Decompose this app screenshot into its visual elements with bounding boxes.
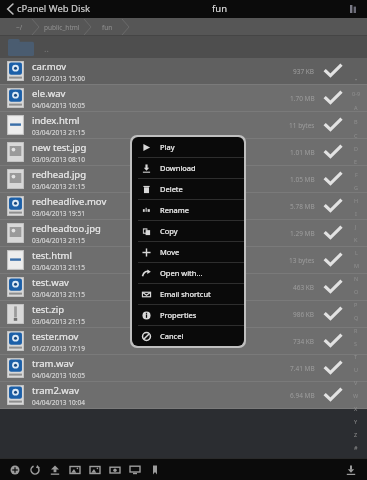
- button[interactable]: Email shortcut: [132, 284, 244, 304]
- button[interactable]: Copy: [132, 221, 244, 241]
- staticText: F: [355, 171, 358, 178]
- staticText: E: [354, 158, 358, 165]
- staticText: Q: [354, 314, 359, 321]
- staticText: 03/04/2013 21:15: [32, 317, 85, 326]
- staticText: D: [354, 145, 359, 152]
- staticText: Play: [160, 142, 175, 152]
- button[interactable]: Camera: [106, 461, 123, 478]
- staticText: tram2.wav: [32, 384, 79, 397]
- staticText: 03/04/2013 21:15: [32, 236, 85, 245]
- staticText: 986 KB: [293, 310, 315, 319]
- button[interactable]: Open with...: [132, 263, 244, 283]
- staticText: Download: [160, 163, 196, 173]
- staticText: tram.wav: [32, 357, 74, 370]
- staticText: 03/04/2013 19:51: [32, 209, 85, 218]
- staticText: 13 bytes: [289, 256, 315, 265]
- staticText: 1.01 MB: [290, 148, 315, 157]
- button[interactable]: Download all: [342, 461, 359, 478]
- staticText: J: [355, 223, 357, 230]
- button[interactable]: Refresh: [26, 461, 43, 478]
- staticText: Cancel: [160, 331, 184, 341]
- button[interactable]: Download: [132, 158, 244, 178]
- staticText: redheadlive.mov: [32, 195, 107, 208]
- button[interactable]: cPanel Web Disk: [4, 0, 94, 17]
- staticText: G: [354, 184, 359, 191]
- staticText: 03/04/2013 21:15: [32, 128, 85, 137]
- staticText: 03/12/2013 15:00: [32, 74, 85, 83]
- button[interactable]: Move: [132, 242, 244, 262]
- button[interactable]: ele.wav: [0, 85, 367, 111]
- staticText: test.html: [32, 249, 72, 262]
- staticText: 1.70 MB: [290, 94, 315, 103]
- button[interactable]: Image: [86, 461, 103, 478]
- staticText: 03/09/2013 08:10: [32, 155, 85, 164]
- button[interactable]: Delete: [132, 179, 244, 199]
- staticText: 937 KB: [293, 67, 315, 76]
- button[interactable]: Cancel: [132, 326, 244, 346]
- staticText: Copy: [160, 226, 178, 236]
- staticText: R: [354, 327, 358, 334]
- staticText: 463 KB: [293, 283, 315, 292]
- staticText: public_html: [44, 23, 80, 32]
- button[interactable]: Play: [132, 137, 244, 157]
- staticText: 6.94 MB: [290, 391, 315, 400]
- button[interactable]: ..: [0, 36, 367, 58]
- staticText: car.mov: [32, 60, 67, 73]
- staticText: 03/04/2013 21:15: [32, 182, 85, 191]
- staticText: ~/: [16, 23, 23, 32]
- staticText: 1.05 MB: [290, 175, 315, 184]
- button[interactable]: Alphabet index: [345, 72, 367, 454]
- button[interactable]: ~/: [6, 18, 32, 36]
- staticText: Email shortcut: [160, 289, 211, 299]
- button[interactable]: Upload: [46, 461, 63, 478]
- staticText: 04/04/2013 10:04: [32, 398, 85, 407]
- staticText: •: [355, 76, 358, 83]
- button[interactable]: new test.jpg: [0, 139, 367, 165]
- staticText: 03/04/2013 21:15: [32, 290, 85, 299]
- staticText: O: [354, 288, 359, 295]
- button[interactable]: Rename: [132, 200, 244, 220]
- button[interactable]: tester.mov: [0, 328, 367, 354]
- button[interactable]: Photo library: [66, 461, 83, 478]
- staticText: 11 bytes: [289, 121, 315, 130]
- button[interactable]: test.zip: [0, 301, 367, 327]
- staticText: 5.78 MB: [290, 202, 315, 211]
- staticText: S: [354, 340, 358, 347]
- staticText: Rename: [160, 205, 189, 215]
- staticText: index.html: [32, 114, 80, 127]
- staticText: redheadtoo.jpg: [32, 222, 101, 235]
- button[interactable]: Screen: [126, 461, 143, 478]
- button[interactable]: test.html: [0, 247, 367, 273]
- staticText: test.wav: [32, 276, 69, 289]
- button[interactable]: Bookmark: [146, 461, 163, 478]
- staticText: T: [354, 353, 358, 360]
- staticText: 0-9: [352, 90, 361, 97]
- button[interactable]: car.mov: [0, 58, 367, 84]
- staticText: W: [353, 392, 359, 399]
- staticText: N: [354, 275, 359, 282]
- button[interactable]: Properties: [132, 305, 244, 325]
- button[interactable]: Add: [6, 461, 23, 478]
- staticText: 734 KB: [293, 337, 315, 346]
- button[interactable]: public_html: [40, 18, 84, 36]
- button[interactable]: test.wav: [0, 274, 367, 300]
- button[interactable]: Sort: [347, 2, 361, 16]
- button[interactable]: redheadtoo.jpg: [0, 220, 367, 246]
- button[interactable]: redhead.jpg: [0, 166, 367, 192]
- staticText: #: [354, 444, 358, 451]
- staticText: C: [354, 132, 358, 139]
- staticText: V: [354, 379, 358, 386]
- button[interactable]: fun: [92, 18, 122, 36]
- staticText: Z: [354, 431, 358, 438]
- button[interactable]: index.html: [0, 112, 367, 138]
- staticText: P: [354, 301, 358, 308]
- staticText: ele.wav: [32, 87, 66, 100]
- button[interactable]: tram.wav: [0, 355, 367, 381]
- staticText: K: [354, 236, 358, 243]
- staticText: test.zip: [32, 303, 65, 316]
- button[interactable]: tram2.wav: [0, 382, 367, 408]
- staticText: 03/04/2013 21:15: [32, 263, 85, 272]
- button[interactable]: redheadlive.mov: [0, 193, 367, 219]
- staticText: new test.jpg: [32, 141, 87, 154]
- staticText: Move: [160, 247, 180, 257]
